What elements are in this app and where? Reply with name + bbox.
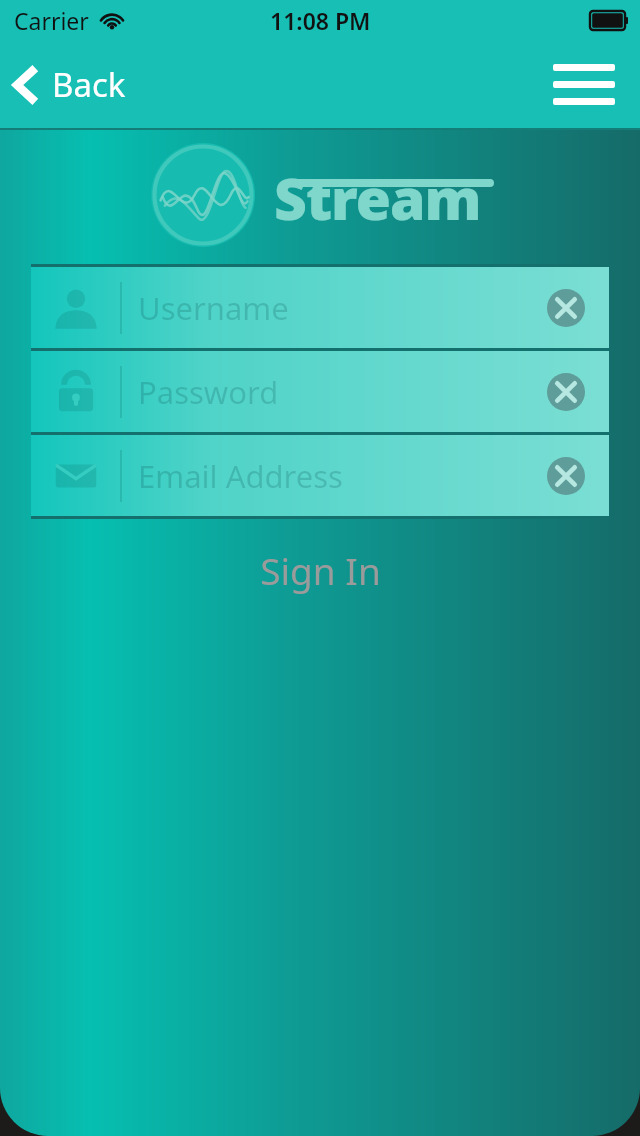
staticText: Password — [138, 371, 543, 413]
staticText: Back — [52, 62, 126, 107]
staticText: Email Address — [138, 455, 543, 497]
button[interactable]: Sign In — [220, 537, 421, 603]
button[interactable]: Username — [31, 267, 609, 348]
staticText: Streamr — [274, 159, 496, 231]
staticText: Sign In — [260, 545, 381, 595]
button[interactable]: Menu — [548, 57, 620, 111]
button[interactable]: Email Address — [31, 435, 609, 516]
staticText: Username — [138, 287, 543, 329]
button[interactable]: Password — [31, 351, 609, 432]
button[interactable]: Clear Email Address — [543, 453, 589, 499]
button[interactable]: Back — [0, 54, 142, 115]
button[interactable]: Clear Username — [543, 285, 589, 331]
staticText: Carrier — [14, 5, 89, 36]
button[interactable]: Clear Password — [543, 369, 589, 415]
staticText: 11:08 PM — [270, 5, 371, 36]
